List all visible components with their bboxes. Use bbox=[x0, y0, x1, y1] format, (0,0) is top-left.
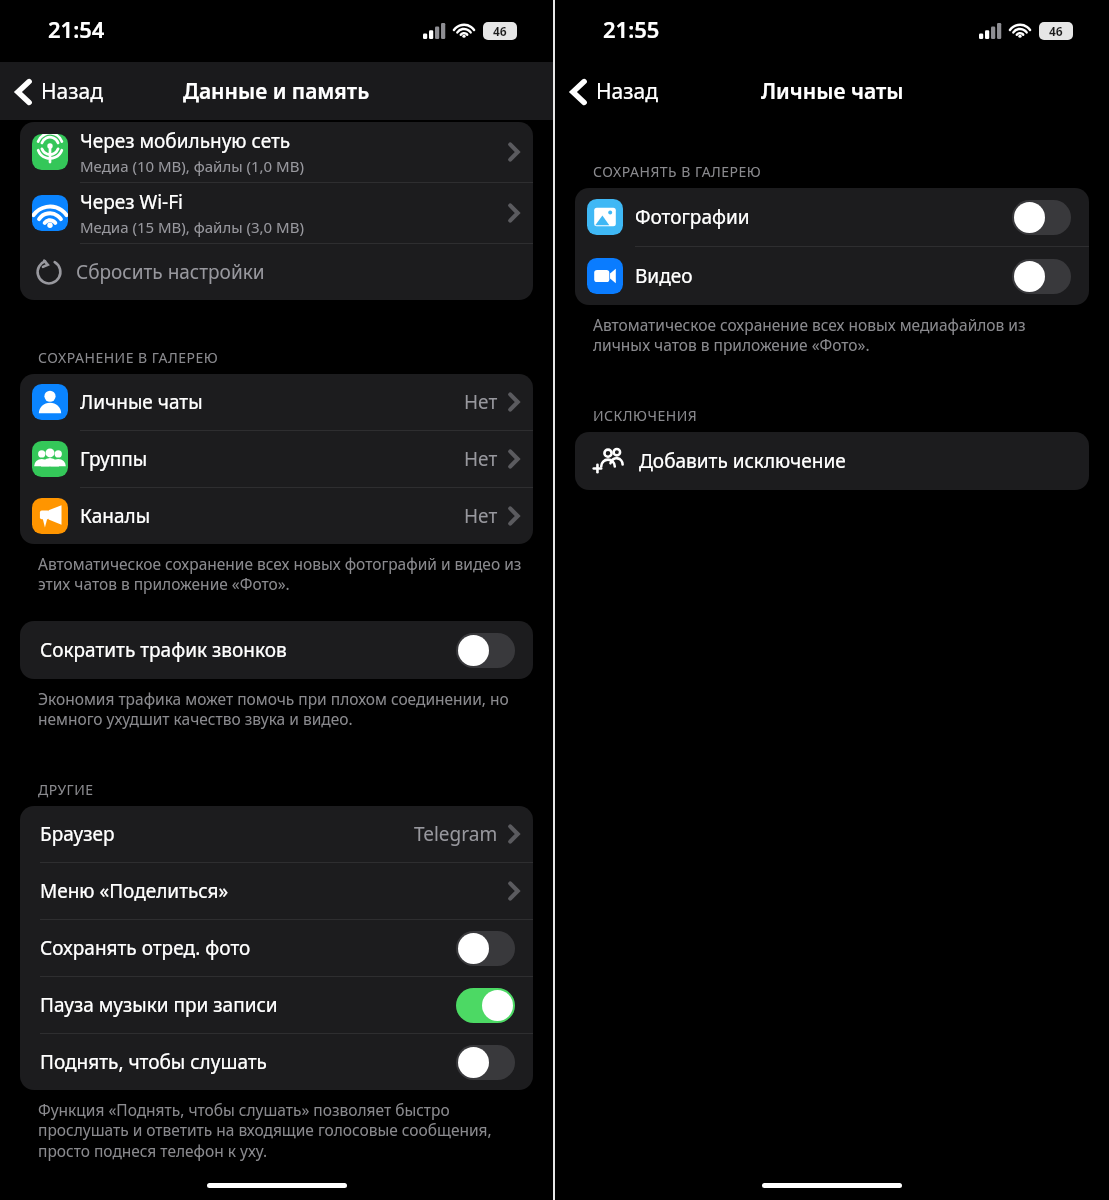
staticText: Нет bbox=[464, 389, 498, 415]
staticText: Telegram bbox=[414, 821, 498, 847]
staticText: Через Wi-Fi bbox=[80, 189, 183, 215]
staticText: ИСКЛЮЧЕНИЯ bbox=[593, 406, 698, 425]
staticText: Функция «Поднять, чтобы слушать» позволя… bbox=[38, 1099, 523, 1162]
staticText: Личные чаты bbox=[761, 77, 904, 106]
button[interactable]: Меню «Поделиться» bbox=[20, 863, 533, 919]
button[interactable]: Toggle bbox=[1012, 259, 1071, 294]
staticText: Нет bbox=[464, 503, 498, 529]
staticText: Автоматическое сохранение всех новых мед… bbox=[593, 314, 1079, 356]
staticText: Сохранять отред. фото bbox=[40, 935, 456, 961]
staticText: СОХРАНЕНИЕ В ГАЛЕРЕЮ bbox=[38, 348, 219, 367]
staticText: Личные чаты bbox=[80, 389, 203, 415]
button[interactable]: Личные чаты bbox=[20, 374, 533, 430]
button[interactable]: Toggle bbox=[1012, 200, 1071, 235]
staticText: Поднять, чтобы слушать bbox=[40, 1049, 456, 1075]
button[interactable]: Toggle bbox=[456, 931, 515, 966]
button[interactable]: Фотографии bbox=[575, 188, 1089, 246]
button[interactable]: Back bbox=[565, 71, 664, 112]
staticText: Добавить исключение bbox=[639, 448, 846, 474]
button[interactable]: Добавить исключение bbox=[575, 432, 1089, 490]
button[interactable]: Браузер bbox=[20, 806, 533, 862]
staticText: Медиа (10 MB), файлы (1,0 MB) bbox=[80, 156, 304, 176]
button[interactable]: Через мобильную сеть bbox=[20, 122, 533, 182]
staticText: 21:54 bbox=[48, 14, 105, 44]
button[interactable]: Группы bbox=[20, 431, 533, 487]
button[interactable]: Toggle bbox=[456, 1045, 515, 1080]
button[interactable]: Сократить трафик звонков bbox=[20, 621, 533, 679]
button[interactable]: Поднять, чтобы слушать bbox=[20, 1034, 533, 1090]
staticText: Фотографии bbox=[635, 204, 1012, 230]
staticText: Назад bbox=[41, 77, 103, 106]
button[interactable]: Каналы bbox=[20, 488, 533, 544]
button[interactable]: Back bbox=[10, 71, 109, 112]
staticText: Данные и память bbox=[183, 77, 370, 106]
button[interactable]: Пауза музыки при записи bbox=[20, 977, 533, 1033]
staticText: Пауза музыки при записи bbox=[40, 992, 456, 1018]
staticText: Экономия трафика может помочь при плохом… bbox=[38, 688, 523, 730]
staticText: Сбросить настройки bbox=[76, 259, 265, 285]
staticText: 46 bbox=[493, 23, 507, 39]
staticText: 21:55 bbox=[603, 14, 660, 44]
staticText: Браузер bbox=[40, 821, 414, 847]
staticText: Группы bbox=[80, 446, 148, 472]
staticText: Медиа (15 MB), файлы (3,0 MB) bbox=[80, 217, 304, 237]
staticText: Сократить трафик звонков bbox=[40, 637, 456, 663]
staticText: Нет bbox=[464, 446, 498, 472]
staticText: 46 bbox=[1049, 23, 1063, 39]
staticText: СОХРАНЯТЬ В ГАЛЕРЕЮ bbox=[593, 162, 762, 181]
staticText: Через мобильную сеть bbox=[80, 128, 291, 154]
staticText: Видео bbox=[635, 263, 1012, 289]
staticText: Назад bbox=[596, 77, 658, 106]
button[interactable]: Видео bbox=[575, 247, 1089, 305]
staticText: Автоматическое сохранение всех новых фот… bbox=[38, 553, 523, 595]
button[interactable]: Сохранять отред. фото bbox=[20, 920, 533, 976]
button[interactable]: Сбросить настройки bbox=[20, 244, 533, 300]
staticText: Меню «Поделиться» bbox=[40, 878, 508, 904]
staticText: Каналы bbox=[80, 503, 151, 529]
staticText: ДРУГИЕ bbox=[38, 780, 94, 799]
button[interactable]: Toggle bbox=[456, 633, 515, 668]
button[interactable]: Toggle bbox=[456, 988, 515, 1023]
button[interactable]: Через Wi-Fi bbox=[20, 183, 533, 243]
